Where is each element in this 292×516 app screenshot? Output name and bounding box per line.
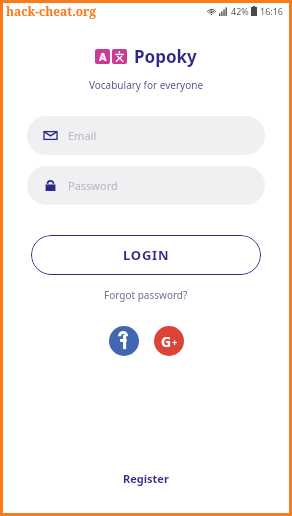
staticText: LOGIN [123, 246, 170, 264]
staticText: A [99, 49, 107, 64]
staticText: Popoky [134, 45, 197, 68]
button[interactable]: Sign in with Google Plus [154, 326, 184, 356]
button[interactable]: Password [27, 166, 265, 205]
staticText: Email [68, 128, 97, 143]
staticText: hack-cheat.org [6, 3, 97, 19]
staticText: Vocabulary for everyone [0, 78, 292, 92]
staticText: Password [68, 178, 118, 193]
button[interactable]: Register [113, 467, 179, 490]
staticText: G [161, 332, 172, 351]
staticText: + [172, 336, 178, 348]
button[interactable]: LOGIN [31, 235, 261, 275]
staticText: 42% [231, 5, 249, 17]
button[interactable]: Sign in with Facebook [109, 326, 139, 356]
button[interactable]: Forgot password? [98, 285, 194, 305]
button[interactable]: Email [27, 116, 265, 155]
staticText: 16:16 [260, 5, 284, 17]
